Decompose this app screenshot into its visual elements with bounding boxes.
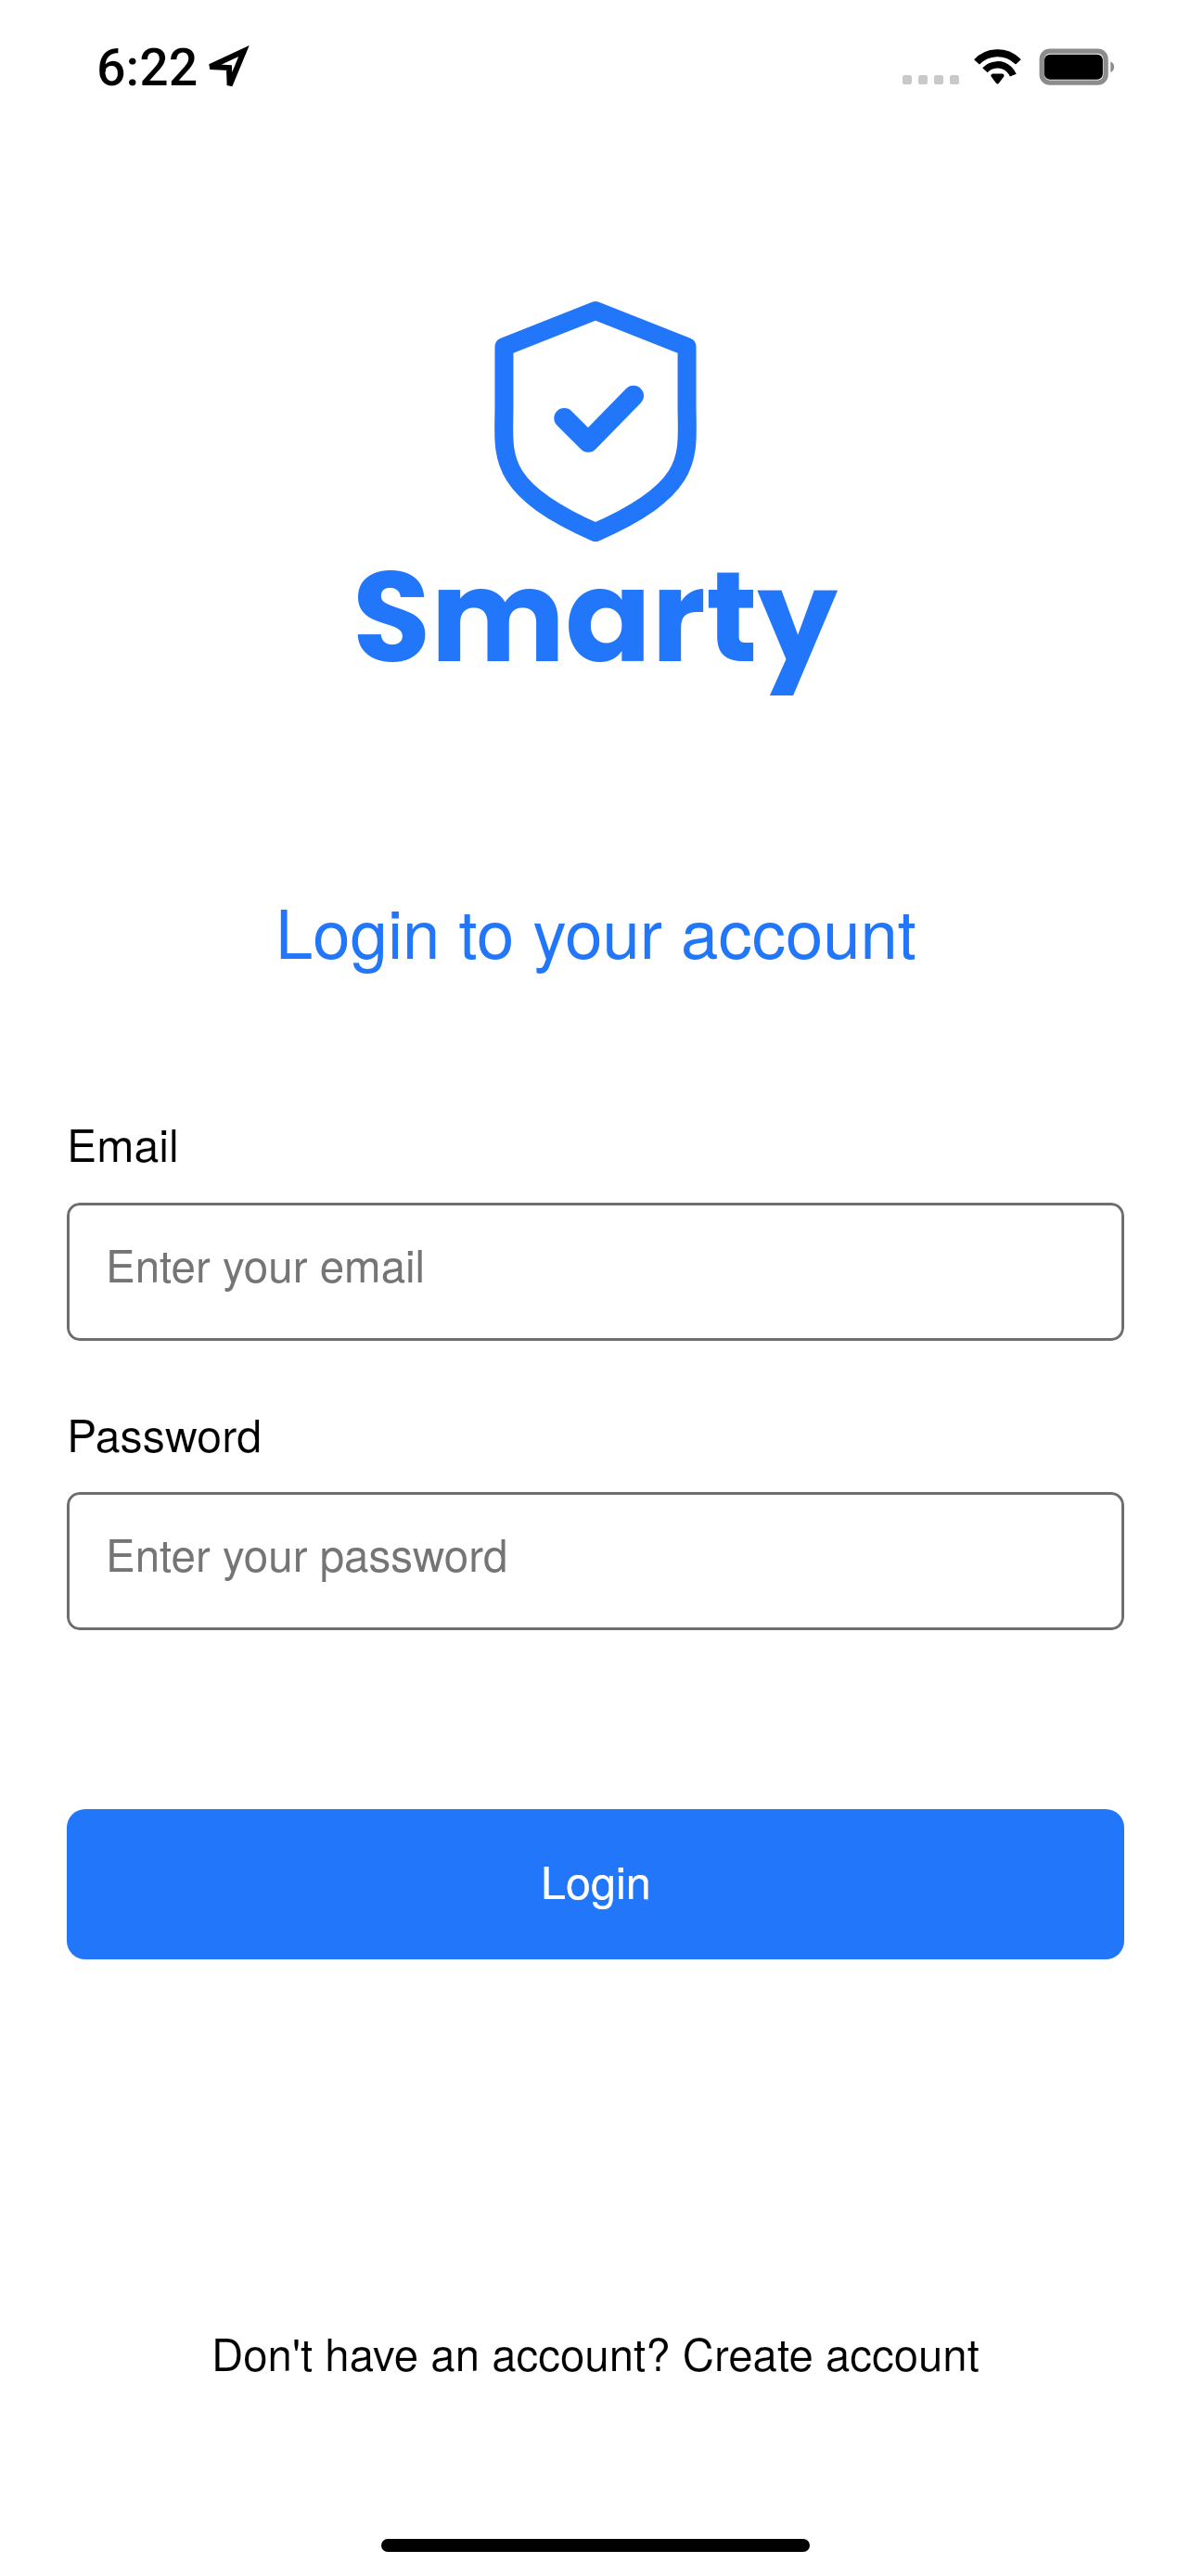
staticText: Email xyxy=(67,1111,179,1175)
other: Battery xyxy=(1037,46,1119,87)
button[interactable]: Don't have an account? Create account xyxy=(211,2321,980,2384)
button[interactable]: Enter your email xyxy=(67,1203,1124,1341)
staticText: Enter your password xyxy=(106,1521,508,1584)
staticText: Login xyxy=(541,1847,651,1911)
other: Wi-Fi xyxy=(970,45,1024,87)
staticText: Enter your email xyxy=(106,1231,426,1294)
staticText: Password xyxy=(67,1401,263,1465)
other: Location xyxy=(205,45,251,91)
button[interactable]: Enter your password xyxy=(67,1492,1124,1630)
staticText: Login to your account xyxy=(275,882,916,978)
other: Cellular signal xyxy=(903,75,959,84)
staticText: Smarty xyxy=(352,528,839,706)
button[interactable]: Login xyxy=(67,1809,1124,1959)
staticText: Don't have an account? Create account xyxy=(211,2321,980,2384)
staticText: 6:22 xyxy=(96,38,198,98)
